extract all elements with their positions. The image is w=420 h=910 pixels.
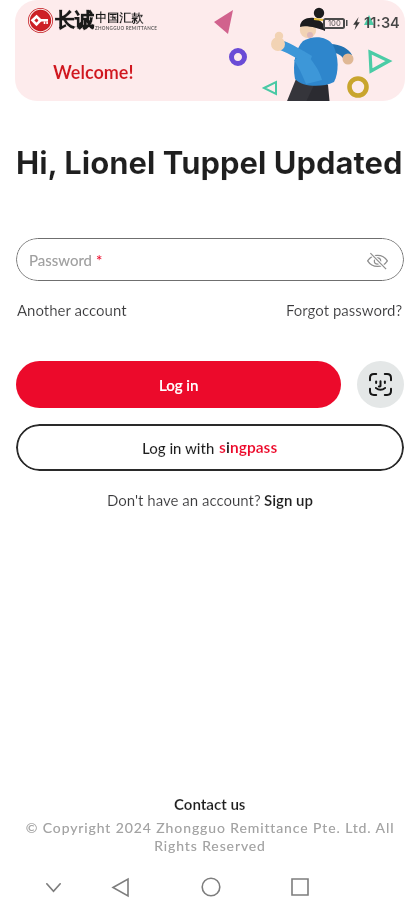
staticText: 11:34 — [364, 14, 400, 32]
staticText: Welcome! — [53, 61, 134, 83]
staticText: Password — [29, 251, 96, 269]
staticText: s — [219, 438, 226, 457]
staticText: i — [226, 438, 230, 457]
staticText: 中国汇款 — [95, 10, 143, 25]
button[interactable]: Log in — [16, 361, 341, 408]
staticText: Log in — [159, 376, 199, 394]
button[interactable]: Show password — [364, 247, 390, 273]
button[interactable]: Sign up — [264, 491, 314, 509]
button[interactable]: Password — [16, 238, 404, 281]
staticText: 100 — [328, 19, 341, 28]
staticText: * — [96, 251, 103, 269]
staticText: Log in with — [142, 439, 219, 457]
staticText: 长诚 — [55, 8, 94, 33]
button[interactable]: Back — [98, 865, 142, 909]
button[interactable]: Contact us — [174, 795, 246, 813]
staticText: ZHONGGUO REMITTANCE — [95, 25, 158, 31]
staticText: Don't have an account? — [107, 491, 261, 509]
staticText: ngpass — [230, 438, 278, 457]
button[interactable]: Face ID login — [357, 361, 404, 408]
staticText: © Copyright 2024 Zhongguo Remittance Pte… — [16, 819, 404, 854]
button[interactable]: Home — [189, 865, 233, 909]
button[interactable]: Hide keyboard — [31, 865, 75, 909]
button[interactable]: Recent apps — [278, 865, 322, 909]
button[interactable]: Log in with — [16, 424, 404, 471]
button[interactable]: Another account — [17, 301, 127, 319]
button[interactable]: Forgot password? — [286, 301, 403, 319]
staticText: Hi, Lionel Tuppel Updated — [16, 144, 403, 182]
